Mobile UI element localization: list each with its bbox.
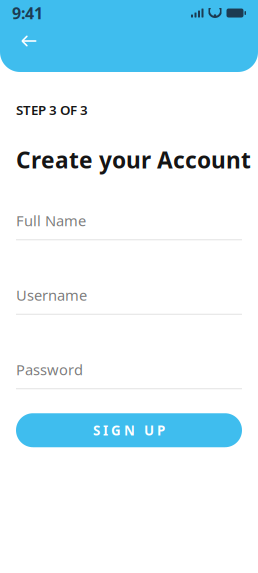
staticText: Full Name: [16, 211, 86, 230]
button[interactable]: Back: [0, 26, 46, 56]
button[interactable]: S I G N U P: [16, 413, 242, 447]
staticText: S I G N U P: [93, 421, 165, 439]
staticText: 9:41: [12, 2, 43, 24]
staticText: Password: [16, 360, 83, 379]
staticText: Create your Account: [16, 145, 251, 175]
staticText: Username: [16, 285, 87, 305]
staticText: STEP 3 OF 3: [16, 101, 88, 119]
